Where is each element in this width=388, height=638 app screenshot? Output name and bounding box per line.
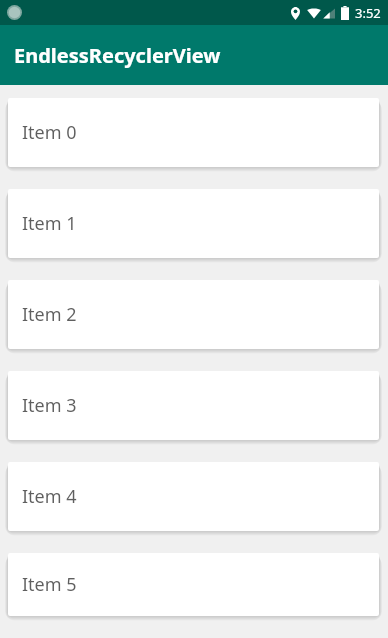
- staticText: Item 4: [22, 484, 77, 509]
- button[interactable]: Item 2: [8, 280, 379, 349]
- button[interactable]: Item 5: [8, 553, 379, 616]
- staticText: EndlessRecyclerView: [14, 42, 221, 69]
- staticText: Item 3: [22, 393, 77, 418]
- staticText: Item 2: [22, 302, 77, 327]
- button[interactable]: Item 3: [8, 371, 379, 440]
- button[interactable]: Item 0: [8, 98, 379, 167]
- staticText: Item 1: [22, 211, 77, 236]
- staticText: 3:52: [355, 4, 381, 22]
- staticText: Item 5: [22, 572, 77, 597]
- button[interactable]: Item 1: [8, 189, 379, 258]
- button[interactable]: Item 4: [8, 462, 379, 531]
- staticText: Item 0: [22, 120, 77, 145]
